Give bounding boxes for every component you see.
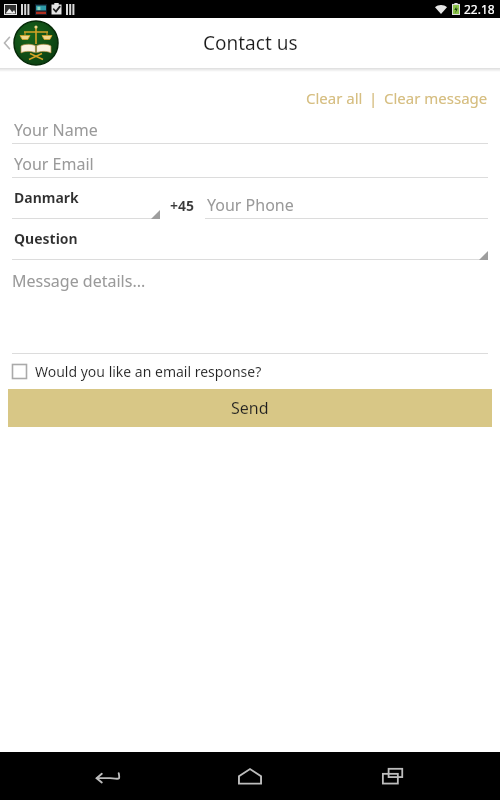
- staticText: Clear message: [384, 88, 488, 108]
- button[interactable]: Home: [227, 753, 273, 799]
- staticText: 22.18: [464, 1, 495, 17]
- button[interactable]: Your Email: [12, 150, 488, 178]
- button[interactable]: Danmark: [12, 184, 160, 219]
- button[interactable]: Clear message: [382, 86, 490, 110]
- staticText: Danmark: [14, 188, 79, 207]
- staticText: Your Name: [14, 119, 98, 141]
- button[interactable]: Would you like an email response?: [0, 360, 500, 383]
- button[interactable]: Question: [12, 225, 488, 260]
- staticText: Would you like an email response?: [35, 362, 262, 381]
- staticText: +45: [170, 196, 195, 215]
- staticText: Question: [14, 229, 78, 248]
- button[interactable]: Back: [84, 753, 130, 799]
- button[interactable]: Back: [0, 21, 58, 65]
- button[interactable]: Send: [8, 389, 492, 427]
- staticText: Send: [231, 397, 269, 419]
- button[interactable]: Clear all: [304, 86, 365, 110]
- staticText: Contact us: [203, 30, 298, 56]
- button[interactable]: Your Name: [12, 116, 488, 144]
- button[interactable]: Message details...: [12, 264, 488, 354]
- staticText: Message details...: [12, 270, 146, 292]
- staticText: |: [365, 88, 382, 108]
- button[interactable]: Your Phone: [205, 191, 488, 219]
- staticText: Clear all: [306, 88, 363, 108]
- staticText: Your Phone: [207, 194, 294, 216]
- staticText: Your Email: [14, 153, 94, 175]
- button[interactable]: Recent apps: [370, 753, 416, 799]
